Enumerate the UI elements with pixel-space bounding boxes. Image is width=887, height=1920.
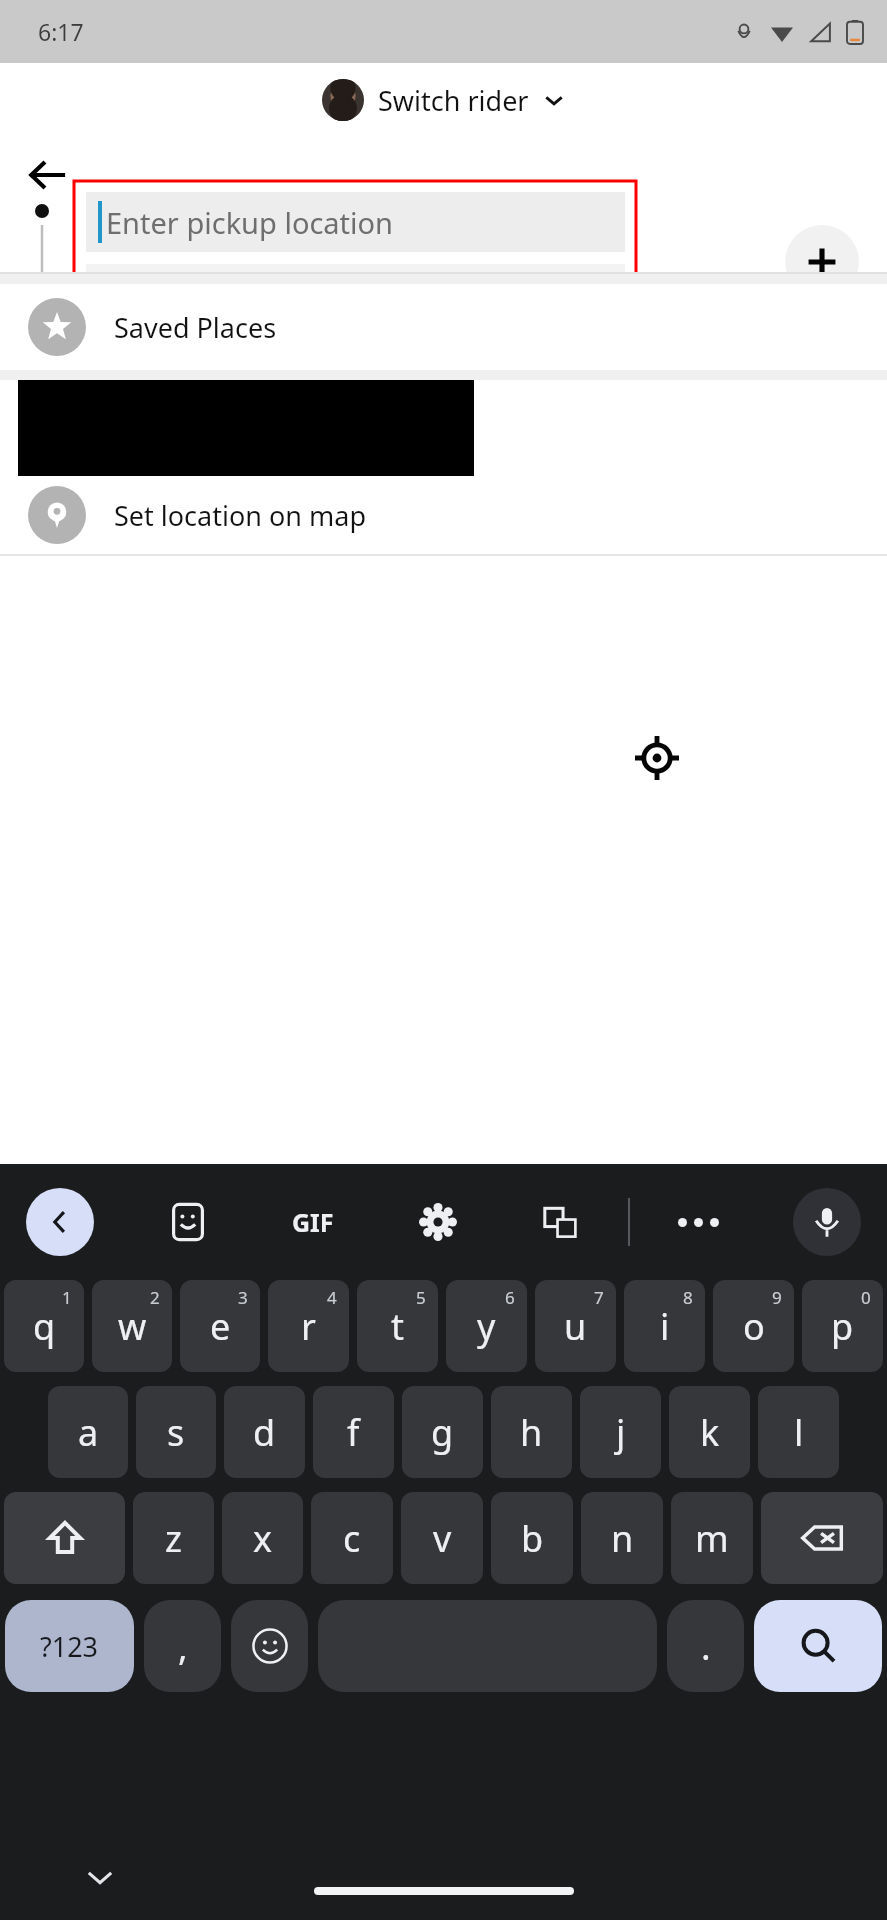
button[interactable]: a <box>48 1386 128 1478</box>
staticText: y <box>477 1302 496 1351</box>
button[interactable]: v <box>401 1492 483 1584</box>
staticText: 3 <box>238 1286 248 1309</box>
button[interactable]: u <box>535 1280 616 1372</box>
button[interactable]: n <box>581 1492 663 1584</box>
staticText: Saved Places <box>114 309 277 346</box>
staticText: l <box>794 1408 804 1457</box>
staticText: m <box>695 1514 729 1563</box>
button[interactable]: p <box>802 1280 883 1372</box>
staticText: v <box>433 1514 452 1563</box>
staticText: GIF <box>292 1205 334 1239</box>
staticText: ?123 <box>40 1628 99 1665</box>
staticText: b <box>521 1514 544 1563</box>
button[interactable]: Set location on map <box>0 476 887 554</box>
staticText: w <box>118 1302 147 1351</box>
button[interactable]: e <box>180 1280 260 1372</box>
staticText: Switch rider <box>378 82 529 119</box>
button[interactable]: GIF <box>283 1192 343 1252</box>
staticText: 8 <box>683 1286 693 1309</box>
button[interactable]: Hide keyboard <box>74 1851 126 1903</box>
button[interactable]: , <box>144 1600 221 1692</box>
button[interactable]: Where to? <box>86 264 625 324</box>
staticText: f <box>347 1408 360 1457</box>
staticText: n <box>611 1514 634 1563</box>
button[interactable]: Search <box>754 1600 882 1692</box>
button[interactable]: Translate <box>533 1195 587 1249</box>
staticText: p <box>831 1302 854 1351</box>
button[interactable]: r <box>268 1280 349 1372</box>
button[interactable]: Emoji <box>231 1600 308 1692</box>
button[interactable]: h <box>491 1386 572 1478</box>
button[interactable]: b <box>491 1492 573 1584</box>
staticText: 2 <box>150 1286 160 1309</box>
staticText: 6:17 <box>38 16 84 47</box>
button[interactable]: Switch rider <box>316 75 571 125</box>
button[interactable]: Back <box>18 145 78 205</box>
button[interactable]: j <box>580 1386 661 1478</box>
button[interactable]: c <box>311 1492 393 1584</box>
staticText: 4 <box>327 1286 337 1309</box>
staticText: 0 <box>861 1286 871 1309</box>
button[interactable]: z <box>133 1492 214 1584</box>
staticText: . <box>701 1622 711 1671</box>
staticText: Where to? <box>108 275 246 314</box>
button[interactable]: f <box>313 1386 394 1478</box>
staticText: c <box>343 1514 361 1563</box>
staticText: r <box>301 1302 316 1351</box>
staticText: j <box>616 1408 626 1457</box>
button[interactable]: m <box>671 1492 753 1584</box>
staticText: 9 <box>772 1286 782 1309</box>
staticText: a <box>78 1408 99 1457</box>
staticText: z <box>165 1514 182 1563</box>
staticText: s <box>167 1408 185 1457</box>
button[interactable]: w <box>92 1280 172 1372</box>
button[interactable]: i <box>624 1280 705 1372</box>
staticText: 7 <box>594 1286 604 1309</box>
button[interactable]: Enter pickup location <box>86 192 625 252</box>
staticText: 1 <box>62 1286 72 1309</box>
button[interactable]: Back <box>26 1188 94 1256</box>
button[interactable]: More <box>671 1195 725 1249</box>
button[interactable]: l <box>758 1386 839 1478</box>
button[interactable]: t <box>357 1280 438 1372</box>
button[interactable]: Stickers <box>161 1195 215 1249</box>
staticText: Enter pickup location <box>106 203 394 242</box>
staticText: , <box>178 1622 188 1671</box>
button[interactable]: Backspace <box>761 1492 883 1584</box>
button[interactable]: g <box>402 1386 483 1478</box>
staticText: 5 <box>416 1286 426 1309</box>
staticText: g <box>431 1408 454 1457</box>
staticText: o <box>743 1302 765 1351</box>
staticText: t <box>391 1302 404 1351</box>
staticText: u <box>564 1302 587 1351</box>
button[interactable]: q <box>4 1280 84 1372</box>
button[interactable]: k <box>669 1386 750 1478</box>
button[interactable]: s <box>136 1386 216 1478</box>
staticText: d <box>253 1408 276 1457</box>
staticText: i <box>660 1302 670 1351</box>
button[interactable]: Saved Places <box>0 284 887 370</box>
staticText: e <box>210 1302 231 1351</box>
button[interactable]: Voice input <box>793 1188 861 1256</box>
button[interactable]: Shift <box>4 1492 125 1584</box>
button[interactable]: Add stop <box>785 225 859 299</box>
button[interactable]: ?123 <box>5 1600 134 1692</box>
button[interactable]: o <box>713 1280 794 1372</box>
button[interactable]: d <box>224 1386 305 1478</box>
staticText: 6 <box>505 1286 515 1309</box>
button[interactable]: y <box>446 1280 527 1372</box>
button[interactable]: Settings <box>411 1195 465 1249</box>
staticText: h <box>520 1408 543 1457</box>
button[interactable]: Space <box>318 1600 657 1692</box>
staticText: k <box>700 1408 720 1457</box>
staticText: Set location on map <box>114 497 367 534</box>
staticText: x <box>253 1514 273 1563</box>
staticText: q <box>33 1302 56 1351</box>
button[interactable]: x <box>222 1492 303 1584</box>
button[interactable]: My location <box>615 716 699 800</box>
button[interactable]: . <box>667 1600 744 1692</box>
